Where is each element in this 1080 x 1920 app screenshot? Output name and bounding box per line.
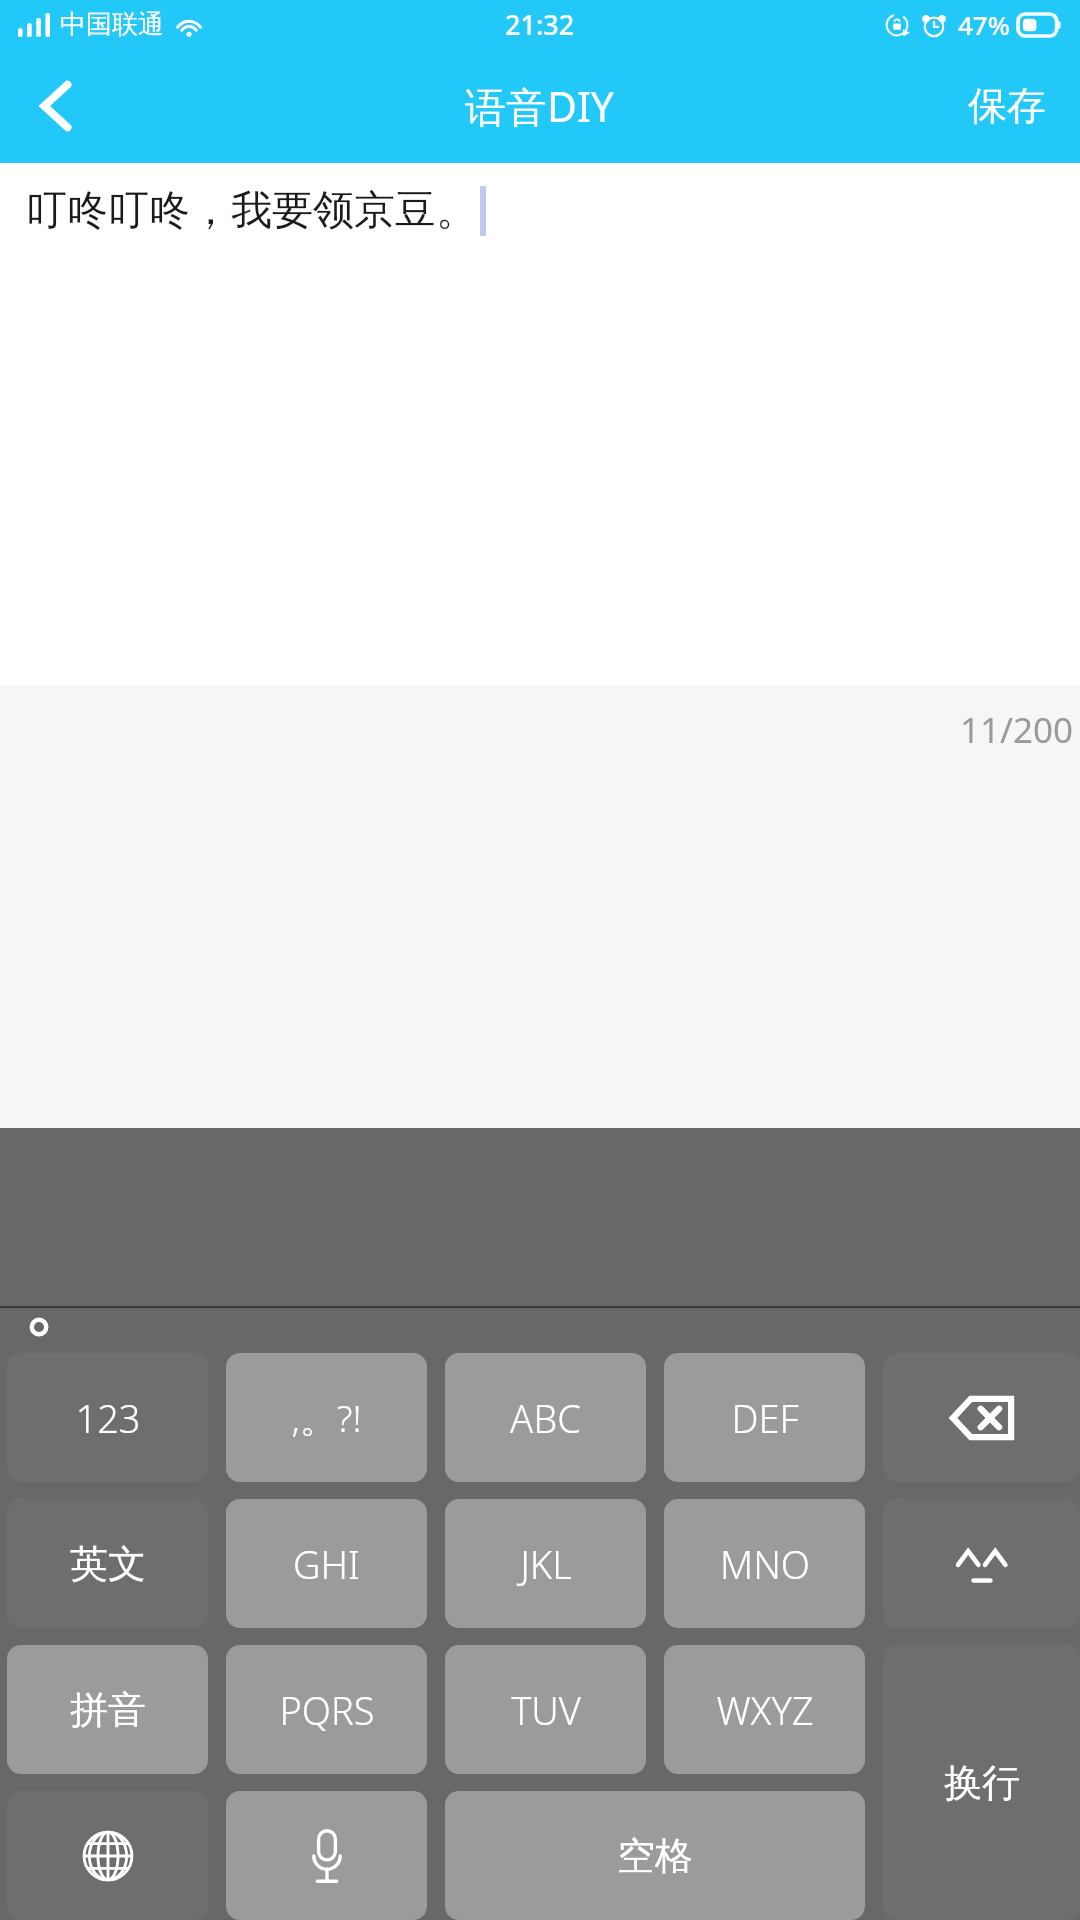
button[interactable]: TUV xyxy=(445,1645,646,1774)
button[interactable]: JKL xyxy=(445,1499,646,1628)
button[interactable]: 叮咚叮咚，我要领京豆。 xyxy=(0,163,1080,685)
staticText: 空格 xyxy=(617,1832,693,1880)
staticText: 拼音 xyxy=(70,1686,146,1734)
button[interactable]: 切换输入法 xyxy=(7,1791,208,1920)
button[interactable]: 删除 xyxy=(883,1353,1080,1482)
staticText: ,。?! xyxy=(291,1392,362,1443)
staticText: 语音DIY xyxy=(465,78,615,134)
staticText: WXYZ xyxy=(716,1684,814,1736)
button[interactable]: 拼音 xyxy=(7,1645,208,1774)
button[interactable]: DEF xyxy=(664,1353,865,1482)
staticText: 换行 xyxy=(944,1759,1020,1807)
button[interactable]: PQRS xyxy=(226,1645,427,1774)
staticText: 47% xyxy=(958,7,1010,42)
button[interactable]: 返回 xyxy=(0,48,110,163)
staticText: ABC xyxy=(510,1392,581,1444)
button[interactable]: 保存 xyxy=(934,48,1080,163)
staticText: 中国联通 xyxy=(60,8,164,41)
button[interactable]: 颜文字 xyxy=(883,1499,1080,1628)
button[interactable]: 换行 xyxy=(883,1645,1080,1920)
staticText: DEF xyxy=(731,1392,799,1444)
staticText: GHI xyxy=(293,1538,360,1590)
button[interactable]: 语音输入 xyxy=(226,1791,427,1920)
button[interactable]: 空格 xyxy=(445,1791,865,1920)
staticText: TUV xyxy=(511,1684,581,1736)
staticText: JKL xyxy=(520,1538,572,1590)
button[interactable]: 123 xyxy=(7,1353,208,1482)
button[interactable]: ABC xyxy=(445,1353,646,1482)
button[interactable]: MNO xyxy=(664,1499,865,1628)
button[interactable]: 英文 xyxy=(7,1499,208,1628)
button[interactable]: WXYZ xyxy=(664,1645,865,1774)
staticText: 英文 xyxy=(70,1540,146,1588)
staticText: 21:32 xyxy=(505,6,575,43)
staticText: 叮咚叮咚，我要领京豆。 xyxy=(26,185,477,237)
staticText: 保存 xyxy=(968,81,1046,130)
staticText: 123 xyxy=(75,1392,141,1444)
button[interactable]: GHI xyxy=(226,1499,427,1628)
button[interactable]: ,。?! xyxy=(226,1353,427,1482)
staticText: MNO xyxy=(720,1538,810,1590)
staticText: 11/200 xyxy=(960,706,1074,754)
staticText: PQRS xyxy=(279,1684,375,1736)
